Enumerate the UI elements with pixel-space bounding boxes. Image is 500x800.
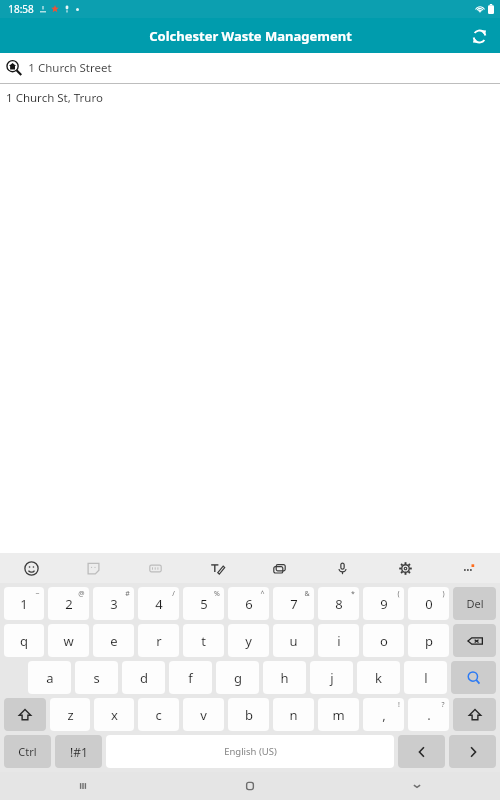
- button[interactable]: h: [263, 661, 306, 694]
- button[interactable]: 9: [363, 587, 404, 620]
- button[interactable]: n: [273, 698, 314, 731]
- button[interactable]: j: [310, 661, 353, 694]
- staticText: q: [20, 632, 28, 650]
- button[interactable]: a: [28, 661, 71, 694]
- button[interactable]: Ctrl: [4, 735, 51, 768]
- button[interactable]: English (US): [106, 735, 394, 768]
- button[interactable]: s: [75, 661, 118, 694]
- button[interactable]: Stickers: [62, 553, 124, 583]
- button[interactable]: Handwriting: [186, 553, 248, 583]
- staticText: /: [172, 589, 175, 599]
- staticText: t: [201, 632, 206, 650]
- button[interactable]: 0: [408, 587, 449, 620]
- button[interactable]: 5: [183, 587, 224, 620]
- button[interactable]: Emoji: [0, 553, 62, 583]
- button[interactable]: 1 Church Street: [0, 53, 500, 83]
- staticText: v: [200, 706, 207, 724]
- staticText: Colchester Waste Management: [149, 27, 352, 45]
- button[interactable]: p: [408, 624, 449, 657]
- button[interactable]: f: [169, 661, 212, 694]
- button[interactable]: Del: [453, 587, 496, 620]
- button[interactable]: 1: [4, 587, 44, 620]
- button[interactable]: 7: [273, 587, 314, 620]
- button[interactable]: k: [357, 661, 400, 694]
- button[interactable]: 4: [138, 587, 179, 620]
- staticText: d: [140, 669, 148, 687]
- staticText: x: [111, 706, 118, 724]
- staticText: English (US): [224, 745, 277, 758]
- button[interactable]: Previous: [398, 735, 445, 768]
- staticText: 8: [335, 595, 343, 613]
- button[interactable]: z: [50, 698, 90, 731]
- staticText: i: [337, 632, 341, 650]
- staticText: j: [330, 669, 334, 687]
- button[interactable]: 8: [318, 587, 359, 620]
- staticText: ^: [260, 589, 265, 599]
- staticText: c: [155, 706, 162, 724]
- button[interactable]: g: [216, 661, 259, 694]
- button[interactable]: i: [318, 624, 359, 657]
- button[interactable]: v: [183, 698, 224, 731]
- staticText: 1 Church St, Truro: [6, 90, 103, 106]
- staticText: *: [351, 589, 355, 599]
- staticText: @: [78, 589, 85, 599]
- staticText: z: [67, 706, 74, 724]
- staticText: u: [289, 632, 298, 650]
- button[interactable]: m: [318, 698, 359, 731]
- button[interactable]: r: [138, 624, 179, 657]
- button[interactable]: l: [404, 661, 447, 694]
- button[interactable]: Shift: [4, 698, 46, 731]
- button[interactable]: e: [93, 624, 134, 657]
- button[interactable]: !#1: [55, 735, 102, 768]
- button[interactable]: .: [408, 698, 449, 731]
- staticText: Ctrl: [18, 744, 37, 759]
- button[interactable]: d: [122, 661, 165, 694]
- staticText: m: [332, 706, 345, 724]
- button[interactable]: o: [363, 624, 404, 657]
- button[interactable]: Backspace: [453, 624, 496, 657]
- button[interactable]: More: [437, 553, 500, 583]
- button[interactable]: u: [273, 624, 314, 657]
- button[interactable]: w: [48, 624, 89, 657]
- staticText: 18:58: [8, 2, 34, 16]
- staticText: 0: [425, 595, 433, 613]
- staticText: s: [93, 669, 100, 687]
- button[interactable]: Hide keyboard: [333, 772, 500, 800]
- button[interactable]: Refresh: [466, 23, 492, 49]
- button[interactable]: GIF: [124, 553, 186, 583]
- button[interactable]: Settings: [374, 553, 437, 583]
- staticText: h: [280, 669, 289, 687]
- button[interactable]: q: [4, 624, 44, 657]
- button[interactable]: x: [94, 698, 134, 731]
- staticText: Del: [466, 596, 484, 611]
- button[interactable]: Shift: [453, 698, 496, 731]
- button[interactable]: Next: [449, 735, 496, 768]
- button[interactable]: Voice input: [311, 553, 374, 583]
- staticText: ~: [35, 589, 40, 599]
- staticText: !: [398, 700, 400, 710]
- button[interactable]: b: [228, 698, 269, 731]
- button[interactable]: y: [228, 624, 269, 657]
- button[interactable]: c: [138, 698, 179, 731]
- staticText: 6: [245, 595, 253, 613]
- button[interactable]: Search: [451, 661, 496, 694]
- staticText: o: [380, 632, 388, 650]
- staticText: #: [125, 589, 130, 599]
- button[interactable]: Clipboard: [248, 553, 311, 583]
- button[interactable]: 6: [228, 587, 269, 620]
- button[interactable]: 3: [93, 587, 134, 620]
- button[interactable]: 2: [48, 587, 89, 620]
- button[interactable]: t: [183, 624, 224, 657]
- button[interactable]: Home: [166, 772, 333, 800]
- staticText: 3: [110, 595, 118, 613]
- button[interactable]: Recents: [0, 772, 166, 800]
- button[interactable]: 1 Church St, Truro: [0, 84, 500, 112]
- button[interactable]: ,: [363, 698, 404, 731]
- staticText: 1: [20, 595, 28, 613]
- staticText: .: [427, 706, 431, 724]
- staticText: ,: [382, 706, 386, 724]
- staticText: g: [234, 669, 242, 687]
- staticText: (: [397, 589, 400, 599]
- staticText: ?: [441, 700, 445, 710]
- staticText: ): [442, 589, 445, 599]
